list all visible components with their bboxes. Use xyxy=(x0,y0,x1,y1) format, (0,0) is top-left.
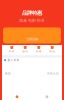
button[interactable]: 药品 xyxy=(45,46,59,53)
staticText: 立即领券 xyxy=(26,37,38,41)
button[interactable]: Home tab xyxy=(2,87,32,100)
staticText: 买菜 xyxy=(36,50,42,53)
staticText: 新人专享 xyxy=(7,58,19,62)
staticText: 超市 xyxy=(22,50,28,53)
staticText: 药品 xyxy=(49,50,55,53)
staticText: 推荐 xyxy=(5,72,11,75)
staticText: 满减·包邮·秒杀 xyxy=(19,18,45,23)
button[interactable]: 买菜 xyxy=(32,46,45,53)
staticText: 查看全部 xyxy=(47,72,59,75)
button[interactable]: 新人专享 xyxy=(2,58,62,63)
button[interactable]: 外卖 xyxy=(5,46,18,53)
staticText: 品牌特惠 xyxy=(22,9,42,16)
button[interactable]: 推荐 xyxy=(2,72,62,76)
button[interactable]: 超市 xyxy=(18,46,32,53)
staticText: 外卖 xyxy=(9,50,15,53)
button[interactable]: Profile tab xyxy=(32,87,62,100)
